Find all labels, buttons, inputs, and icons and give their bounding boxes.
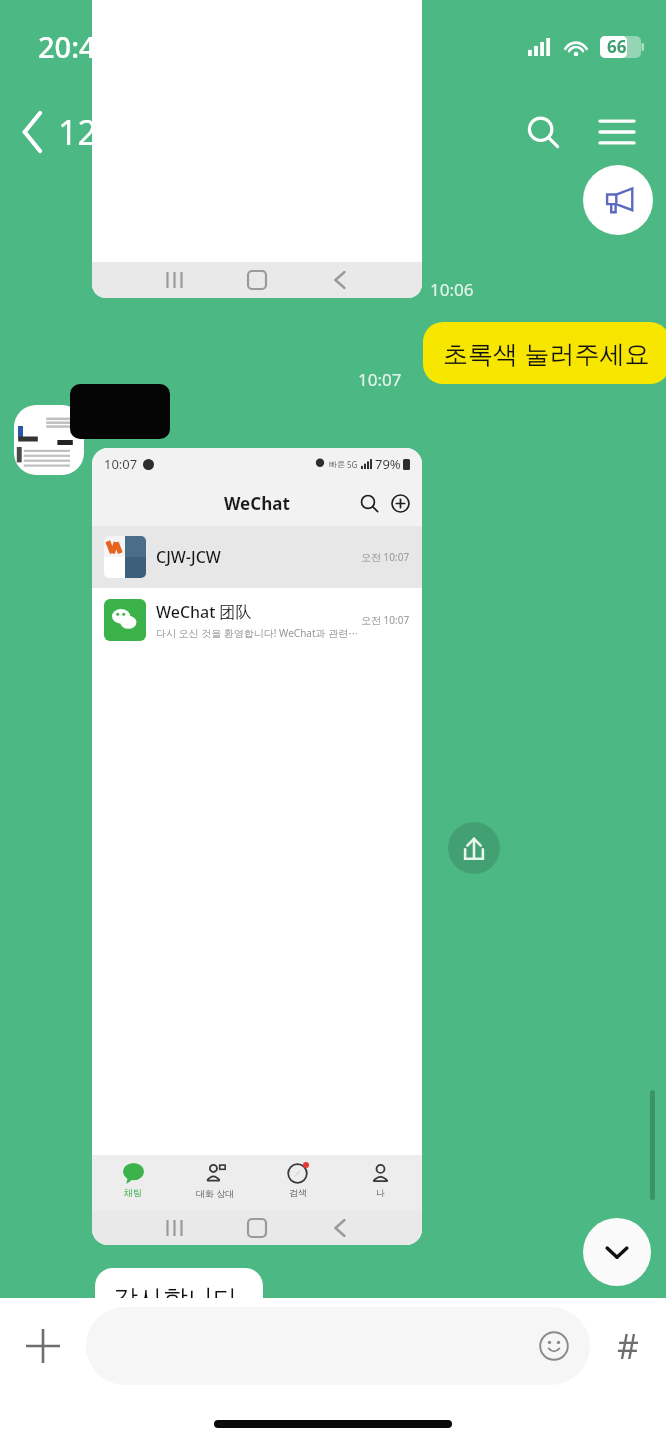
button[interactable]: Emoji (86, 1307, 590, 1385)
staticText: 오전 10:07 (361, 613, 410, 627)
staticText: 20:48 (38, 27, 113, 66)
staticText: 대화 상대 (196, 1187, 235, 1199)
button[interactable]: 감사합니다. (95, 1268, 263, 1318)
staticText: WeChat (224, 492, 290, 515)
button[interactable]: Menu (586, 101, 648, 163)
staticText: 12 (58, 109, 97, 155)
button[interactable]: Emoji (526, 1318, 582, 1374)
button[interactable]: 대화 상대 (174, 1155, 256, 1211)
button[interactable]: Add attachment (0, 1303, 86, 1389)
button[interactable]: 나 (339, 1155, 422, 1211)
button[interactable]: Share (448, 822, 500, 874)
staticText: 나 (376, 1187, 385, 1198)
staticText: 10:06 (430, 278, 474, 301)
button[interactable]: Hashtag (590, 1308, 666, 1384)
staticText: 5G (347, 459, 358, 470)
staticText: 10:07 (104, 455, 138, 473)
staticText: 채팅 (124, 1187, 142, 1198)
staticText: 빠른 (329, 459, 345, 469)
staticText: CJW-JCW (156, 546, 361, 568)
button[interactable]: Announcement (583, 165, 653, 235)
button[interactable]: 12 (0, 99, 119, 165)
staticText: 다시 오신 것을 환영합니다! WeChat과 관련하여 문... (156, 626, 361, 640)
staticText: 오전 10:07 (361, 550, 410, 564)
button[interactable]: 검색 (256, 1155, 339, 1211)
button[interactable]: CJW-JCW (92, 526, 422, 588)
button[interactable]: 초록색 눌러주세요 (423, 322, 666, 384)
button[interactable]: Search (512, 101, 574, 163)
staticText: WeChat 团队 (156, 601, 252, 623)
button[interactable]: WeChat 团队 (92, 588, 422, 652)
staticText: 79% (375, 455, 401, 473)
staticText: 66 (607, 35, 627, 58)
button[interactable]: 10:07 (92, 448, 422, 1245)
staticText: 감사합니다. (113, 1280, 245, 1314)
button[interactable] (92, 0, 422, 298)
button[interactable]: 채팅 (92, 1155, 174, 1211)
button[interactable]: Profile picture (14, 405, 84, 475)
staticText: 초록색 눌러주세요 (443, 336, 650, 370)
button[interactable]: Scroll to bottom (583, 1218, 651, 1286)
staticText: 검색 (289, 1187, 307, 1198)
staticText: 10:07 (358, 368, 402, 391)
staticText: # (617, 1323, 639, 1369)
